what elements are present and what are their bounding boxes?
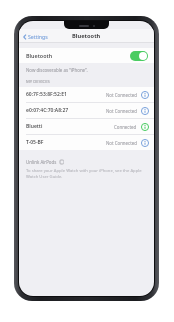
button[interactable]: Device info <box>140 138 149 147</box>
button[interactable]: Unlink AirPods <box>26 159 64 165</box>
button[interactable]: Device info <box>140 106 149 115</box>
button[interactable]: Device info <box>140 122 149 131</box>
button[interactable]: Settings <box>19 30 53 43</box>
staticText: Not Connected <box>106 92 137 98</box>
staticText: Bluetooth <box>26 52 53 59</box>
staticText: MY DEVICES <box>26 79 50 85</box>
staticText: Bluetooth <box>72 32 101 40</box>
staticText: Settings <box>28 33 48 40</box>
staticText: Unlink AirPods <box>26 159 57 165</box>
button[interactable]: Bluetooth <box>19 48 154 63</box>
button[interactable]: Device info <box>140 90 149 99</box>
staticText: Bluetti <box>26 123 43 130</box>
button[interactable]: Bluetooth toggle, on <box>130 51 148 61</box>
staticText: To share your Apple Watch with your iPho… <box>26 168 147 180</box>
button[interactable]: Bluetti <box>19 119 154 134</box>
staticText: Now discoverable as “iPhone”. <box>26 67 88 73</box>
button[interactable]: 60:7F:53:8F:52:E1 <box>19 87 154 102</box>
staticText: Connected <box>114 124 137 130</box>
staticText: Not Connected <box>106 140 137 146</box>
button[interactable]: T-05-BF <box>19 135 154 150</box>
staticText: Not Connected <box>106 108 137 114</box>
staticText: 60:7F:53:8F:52:E1 <box>26 91 67 98</box>
staticText: e0:07:4C:70:A8:27 <box>26 107 69 114</box>
staticText: T-05-BF <box>26 139 44 146</box>
button[interactable]: e0:07:4C:70:A8:27 <box>19 103 154 118</box>
